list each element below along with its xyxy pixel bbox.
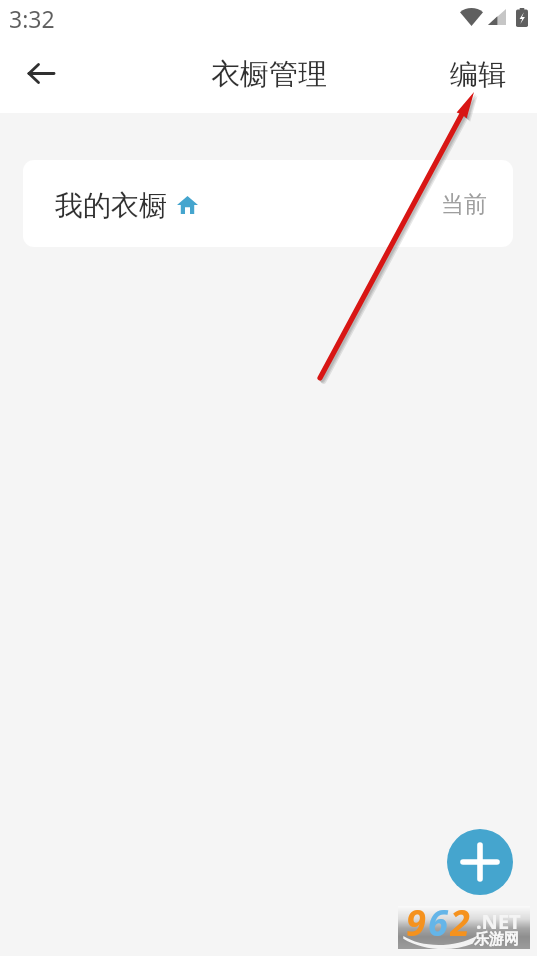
button[interactable]: 我的衣橱 (23, 160, 513, 247)
staticText: 当前 (441, 190, 487, 219)
staticText: 9 (406, 898, 428, 941)
button[interactable]: 编辑 (438, 52, 518, 107)
staticText: 3:32 (9, 3, 55, 34)
staticText: 2 (450, 898, 470, 941)
staticText: 编辑 (450, 57, 506, 92)
button[interactable]: Add wardrobe (447, 829, 513, 895)
button[interactable]: Back (11, 51, 67, 107)
staticText: 6 (428, 898, 450, 941)
staticText: 乐游网 (474, 930, 519, 949)
staticText: 我的衣橱 (55, 188, 167, 223)
staticText: .NET (476, 908, 521, 935)
staticText: 衣橱管理 (211, 56, 327, 93)
